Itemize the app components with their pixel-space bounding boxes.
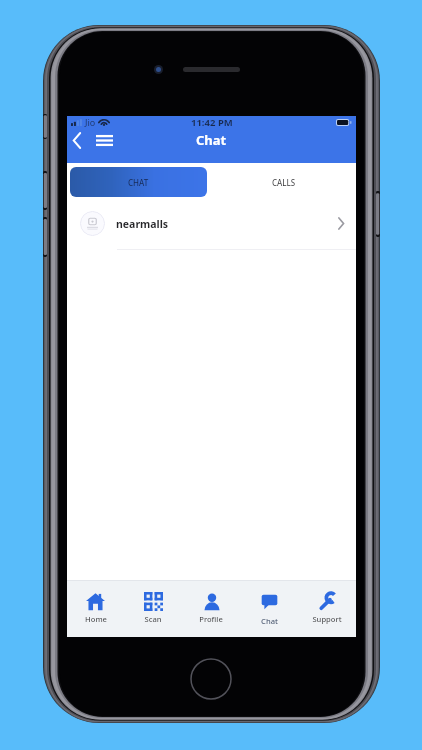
staticText: Scan — [144, 614, 162, 624]
staticText: nearmalls — [116, 217, 169, 231]
button[interactable]: Chat — [240, 581, 298, 637]
staticText: CALLS — [272, 177, 296, 188]
button[interactable]: nearmalls — [67, 198, 356, 249]
staticText: CHAT — [128, 177, 149, 188]
staticText: Profile — [199, 614, 223, 624]
button[interactable]: CALLS — [211, 167, 356, 197]
button[interactable]: CHAT — [70, 167, 207, 197]
staticText: Support — [312, 614, 342, 624]
staticText: 11:42 PM — [191, 116, 233, 128]
button[interactable]: Support — [298, 581, 356, 637]
button[interactable]: Back — [68, 128, 86, 152]
staticText: Jio — [85, 116, 96, 128]
staticText: Chat — [261, 616, 278, 626]
button[interactable]: Scan — [124, 581, 182, 637]
button[interactable]: Home — [67, 581, 124, 637]
staticText: Chat — [196, 131, 227, 149]
staticText: Home — [85, 614, 107, 624]
button[interactable]: Profile — [182, 581, 240, 637]
button[interactable]: Menu — [92, 128, 116, 152]
